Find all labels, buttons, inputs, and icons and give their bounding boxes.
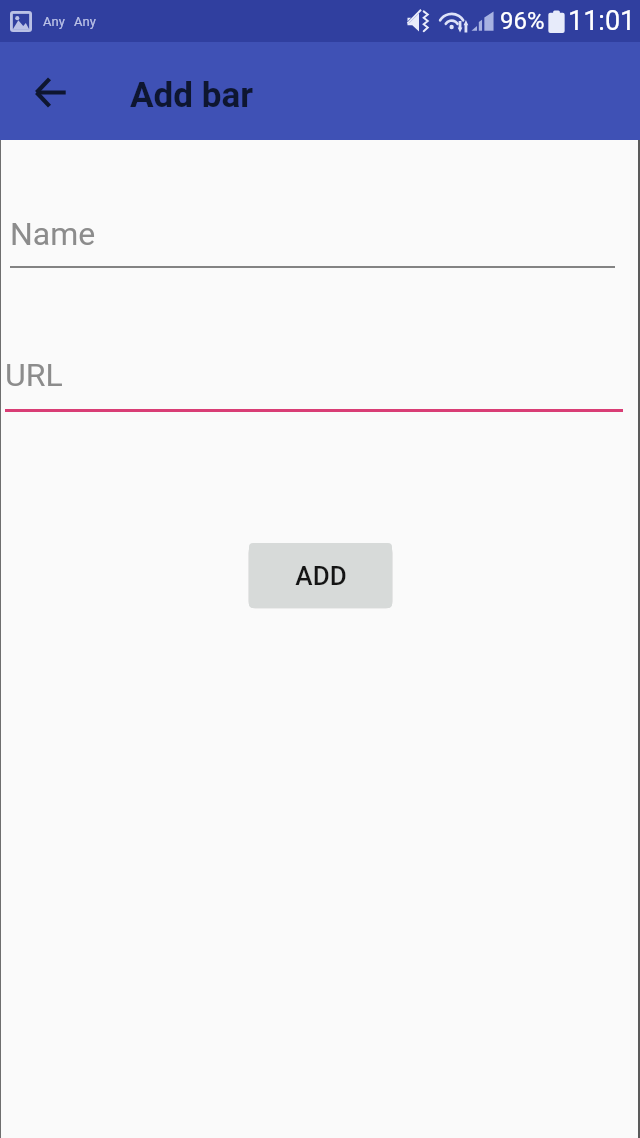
staticText: 11:01: [568, 5, 636, 37]
button[interactable]: Name: [10, 188, 615, 268]
staticText: ADD: [295, 561, 347, 591]
button[interactable]: Navigate up: [18, 59, 84, 125]
button[interactable]: ADD: [249, 543, 392, 608]
staticText: Any: [43, 14, 65, 29]
button[interactable]: URL: [5, 332, 623, 412]
staticText: Add bar: [130, 75, 254, 116]
staticText: Any: [74, 14, 96, 29]
staticText: Name: [10, 215, 96, 253]
staticText: 96%: [500, 7, 545, 35]
staticText: URL: [5, 356, 63, 394]
